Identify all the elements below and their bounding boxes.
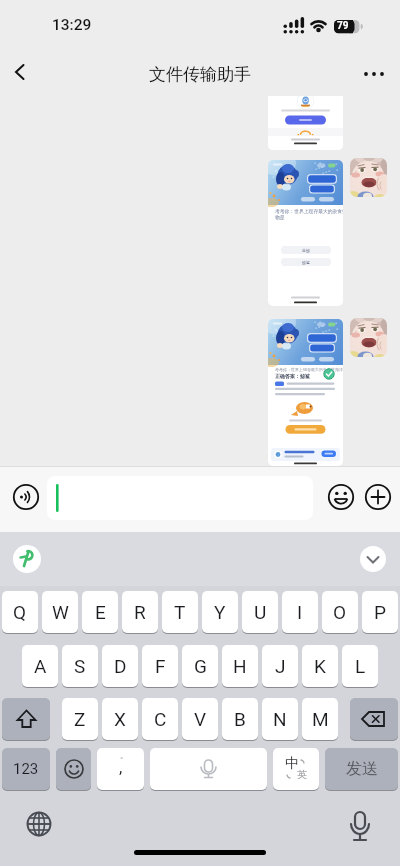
button[interactable] — [343, 806, 377, 840]
staticText: 正确答案：鲸鲨 — [275, 373, 310, 379]
button[interactable] — [356, 56, 392, 92]
staticText: I — [297, 601, 303, 623]
staticText: 79 — [337, 20, 349, 32]
button[interactable]: E — [82, 591, 118, 633]
button[interactable] — [10, 481, 42, 513]
staticText: P — [374, 601, 386, 623]
button[interactable]: H — [222, 645, 258, 687]
button[interactable]: N — [262, 698, 298, 740]
staticText: S — [74, 655, 86, 677]
button[interactable] — [22, 806, 56, 840]
staticText: N — [273, 708, 287, 730]
button[interactable]: D — [102, 645, 138, 687]
button[interactable] — [350, 318, 387, 357]
button[interactable]: T — [162, 591, 198, 633]
staticText: X — [114, 708, 126, 730]
staticText: 蓝鲸 — [302, 248, 310, 253]
staticText: G — [194, 655, 207, 677]
button[interactable] — [13, 545, 41, 573]
button[interactable]: Q — [2, 591, 38, 633]
button[interactable] — [56, 748, 91, 790]
button[interactable]: Y — [202, 591, 238, 633]
button[interactable]: 123 — [2, 748, 50, 790]
button[interactable]: K — [302, 645, 338, 687]
staticText: A — [34, 655, 47, 677]
staticText: 中 — [285, 755, 299, 773]
staticText: 13:29 — [52, 16, 92, 34]
staticText: M — [312, 708, 329, 730]
button[interactable]: O — [322, 591, 358, 633]
staticText: 发送 — [346, 759, 378, 779]
button[interactable] — [2, 698, 50, 740]
button[interactable]: A — [22, 645, 58, 687]
button[interactable]: Z — [62, 698, 98, 740]
button[interactable] — [350, 158, 387, 197]
staticText: O — [333, 601, 347, 623]
button[interactable] — [268, 96, 343, 150]
staticText: , — [119, 757, 123, 777]
button[interactable]: R — [122, 591, 158, 633]
staticText: 。 — [120, 750, 128, 760]
staticText: C — [154, 708, 167, 730]
staticText: 考考你：世界上现存最大的杂食性 物是 — [275, 208, 343, 221]
staticText: 英 — [297, 768, 307, 781]
button[interactable]: 中 — [273, 748, 319, 790]
staticText: B — [234, 708, 246, 730]
staticText: H — [233, 655, 247, 677]
button[interactable]: F — [142, 645, 178, 687]
button[interactable]: W — [42, 591, 78, 633]
button[interactable]: I — [282, 591, 318, 633]
button[interactable]: M — [302, 698, 338, 740]
staticText: 123 — [13, 760, 39, 778]
button[interactable] — [360, 546, 386, 572]
button[interactable]: , — [97, 748, 144, 790]
button[interactable] — [350, 698, 398, 740]
button[interactable]: B — [222, 698, 258, 740]
button[interactable] — [6, 54, 42, 90]
button[interactable]: U — [242, 591, 278, 633]
staticText: T — [174, 601, 186, 623]
staticText: R — [134, 601, 146, 623]
staticText: 鲸鲨 — [302, 260, 310, 265]
button[interactable] — [150, 748, 267, 790]
button[interactable]: 发送 — [325, 748, 398, 790]
staticText: V — [194, 708, 207, 730]
staticText: Q — [13, 601, 27, 623]
button[interactable] — [325, 481, 357, 513]
staticText: 考考你：世界上现存最大的杂食性海洋生物 — [275, 367, 343, 372]
staticText: Y — [214, 601, 226, 623]
staticText: F — [155, 655, 166, 677]
staticText: U — [254, 601, 267, 623]
button[interactable]: G — [182, 645, 218, 687]
button[interactable]: C — [142, 698, 178, 740]
staticText: E — [95, 601, 106, 623]
staticText: D — [114, 655, 127, 677]
button[interactable]: X — [102, 698, 138, 740]
staticText: 文件传输助手 — [149, 64, 251, 85]
button[interactable] — [362, 481, 394, 513]
button[interactable]: S — [62, 645, 98, 687]
button[interactable]: V — [182, 698, 218, 740]
button[interactable] — [47, 476, 313, 520]
staticText: K — [314, 655, 326, 677]
staticText: L — [355, 655, 366, 677]
staticText: J — [275, 655, 286, 677]
staticText: W — [52, 601, 69, 623]
button[interactable]: J — [262, 645, 298, 687]
button[interactable]: P — [362, 591, 398, 633]
staticText: Z — [74, 708, 86, 730]
button[interactable]: 考考你：世界上现存最大的杂食性 物是 — [268, 160, 343, 306]
button[interactable]: L — [342, 645, 378, 687]
button[interactable]: 考考你：世界上现存最大的杂食性海洋生物 — [268, 319, 343, 466]
